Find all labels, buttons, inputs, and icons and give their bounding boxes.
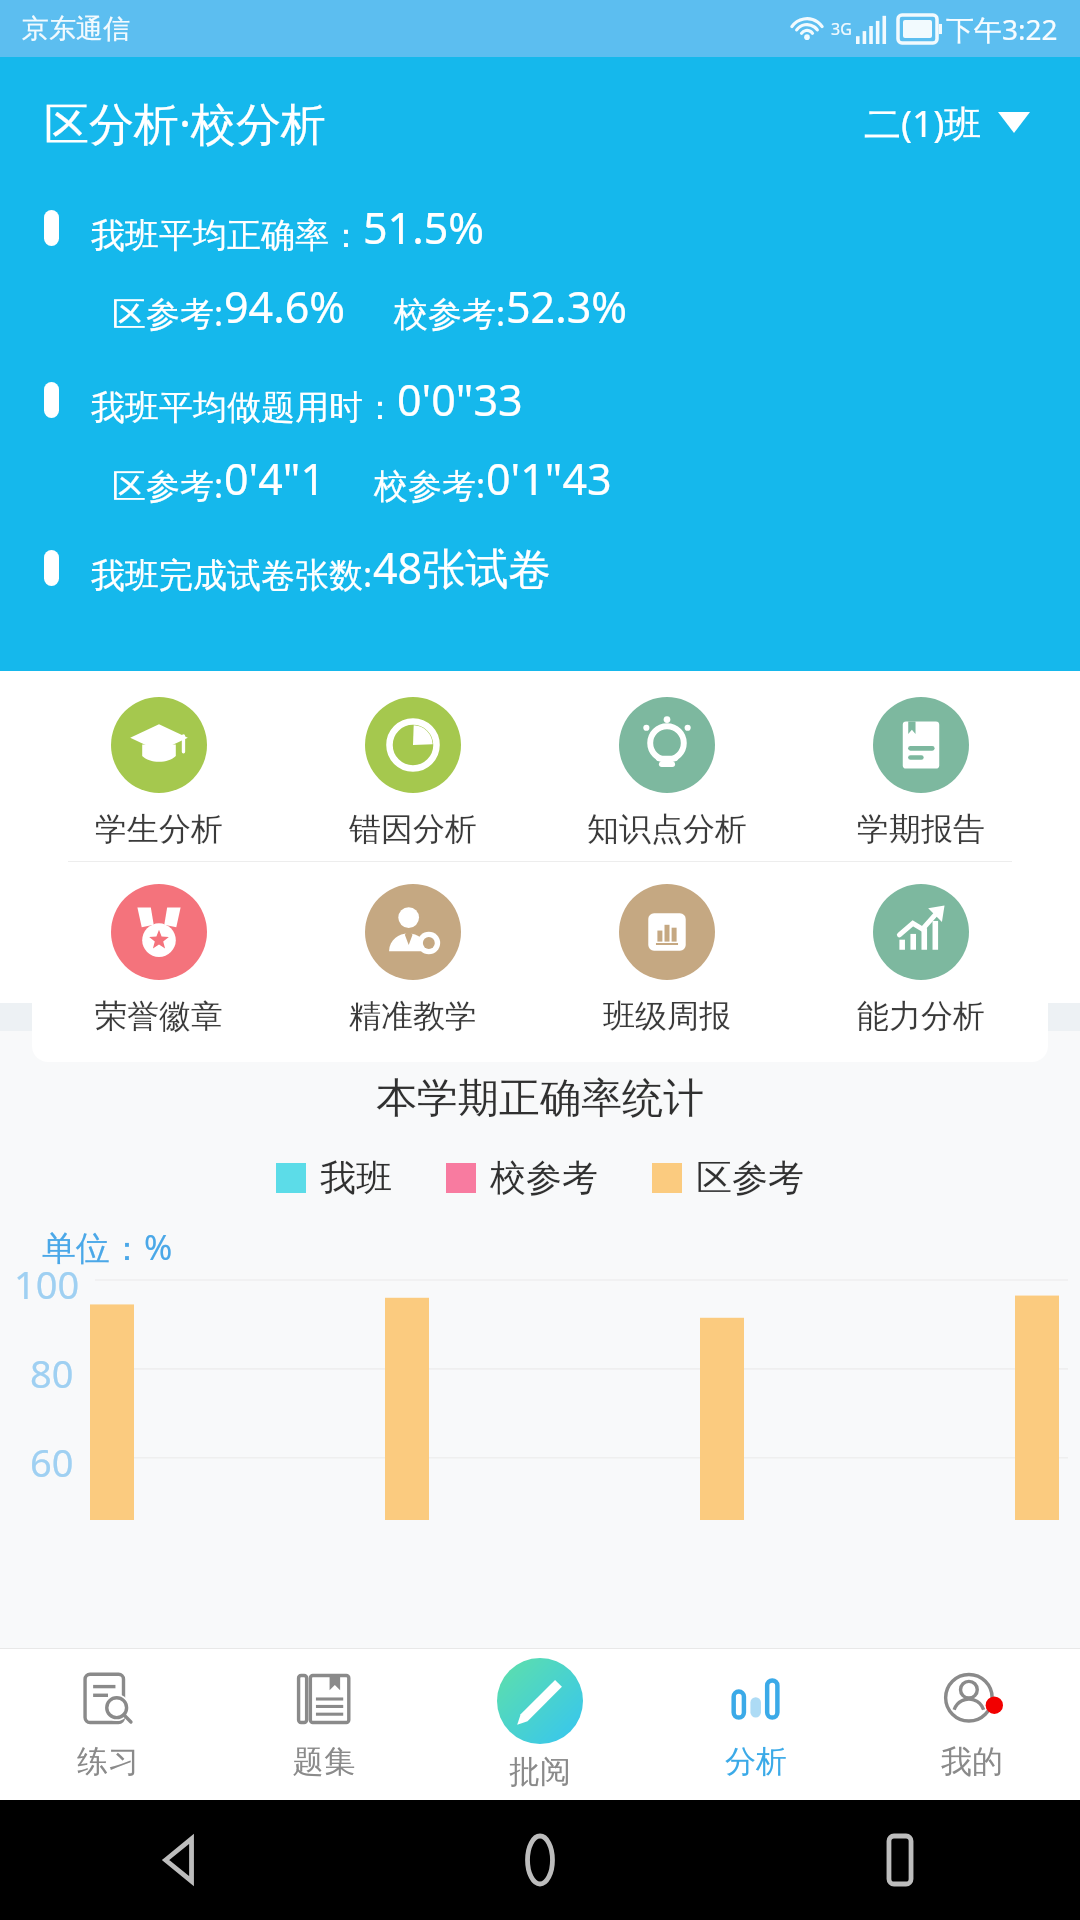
- staticText: 100: [14, 1258, 80, 1310]
- staticText: 我班完成试卷张数:: [91, 551, 373, 597]
- button[interactable]: 能力分析: [794, 878, 1048, 1042]
- staticText: 京东通信: [22, 12, 130, 46]
- button[interactable]: 题集: [216, 1648, 432, 1800]
- staticText: 60: [30, 1436, 74, 1488]
- button[interactable]: 练习: [0, 1648, 216, 1800]
- button[interactable]: 二(1)班: [858, 91, 1036, 154]
- button[interactable]: Recents: [864, 1824, 936, 1896]
- staticText: 我班: [320, 1155, 392, 1200]
- staticText: 学生分析: [95, 809, 223, 849]
- button[interactable]: 知识点分析: [540, 691, 794, 855]
- staticText: 二(1)班: [864, 97, 982, 148]
- staticText: 我的: [941, 1742, 1003, 1781]
- button[interactable]: 分析: [648, 1648, 864, 1800]
- staticText: 练习: [77, 1742, 139, 1781]
- staticText: 0'4"1: [224, 449, 326, 508]
- button[interactable]: 错因分析: [286, 691, 540, 855]
- staticText: 校参考:: [374, 462, 486, 508]
- staticText: 区参考:: [112, 290, 224, 336]
- staticText: 94.6%: [224, 277, 346, 336]
- button[interactable]: 荣誉徽章: [32, 878, 286, 1042]
- staticText: 80: [30, 1347, 74, 1399]
- staticText: 52.3%: [506, 277, 628, 336]
- staticText: 3G: [831, 18, 852, 40]
- staticText: 区分析·校分析: [44, 92, 327, 153]
- staticText: 我班平均做题用时：: [91, 386, 397, 429]
- button[interactable]: 精准教学: [286, 878, 540, 1042]
- staticText: 51.5%: [363, 198, 485, 257]
- staticText: 下午3:22: [946, 10, 1058, 48]
- staticText: 单位：%: [42, 1224, 173, 1270]
- staticText: 班级周报: [603, 996, 731, 1036]
- staticText: 错因分析: [349, 809, 477, 849]
- staticText: 0'0"33: [397, 370, 523, 429]
- button[interactable]: 班级周报: [540, 878, 794, 1042]
- staticText: 精准教学: [349, 996, 477, 1036]
- staticText: 荣誉徽章: [95, 996, 223, 1036]
- staticText: 0'1"43: [486, 449, 612, 508]
- staticText: 区参考: [696, 1155, 804, 1200]
- staticText: 48张试卷: [373, 538, 552, 597]
- button[interactable]: 学生分析: [32, 691, 286, 855]
- staticText: 题集: [293, 1742, 355, 1781]
- button[interactable]: 学期报告: [794, 691, 1048, 855]
- staticText: 我班平均正确率：: [91, 214, 363, 257]
- staticText: 区参考:: [112, 462, 224, 508]
- button[interactable]: Home: [504, 1824, 576, 1896]
- staticText: 分析: [725, 1742, 787, 1781]
- staticText: 知识点分析: [587, 809, 747, 849]
- staticText: 学期报告: [857, 809, 985, 849]
- staticText: 校参考: [490, 1155, 598, 1200]
- staticText: 校参考:: [394, 290, 506, 336]
- staticText: 本学期正确率统计: [0, 1073, 1080, 1125]
- staticText: 批阅: [509, 1752, 571, 1791]
- staticText: 能力分析: [857, 996, 985, 1036]
- button[interactable]: 我的: [864, 1648, 1080, 1800]
- button[interactable]: Back: [144, 1824, 216, 1896]
- button[interactable]: 批阅: [432, 1648, 648, 1800]
